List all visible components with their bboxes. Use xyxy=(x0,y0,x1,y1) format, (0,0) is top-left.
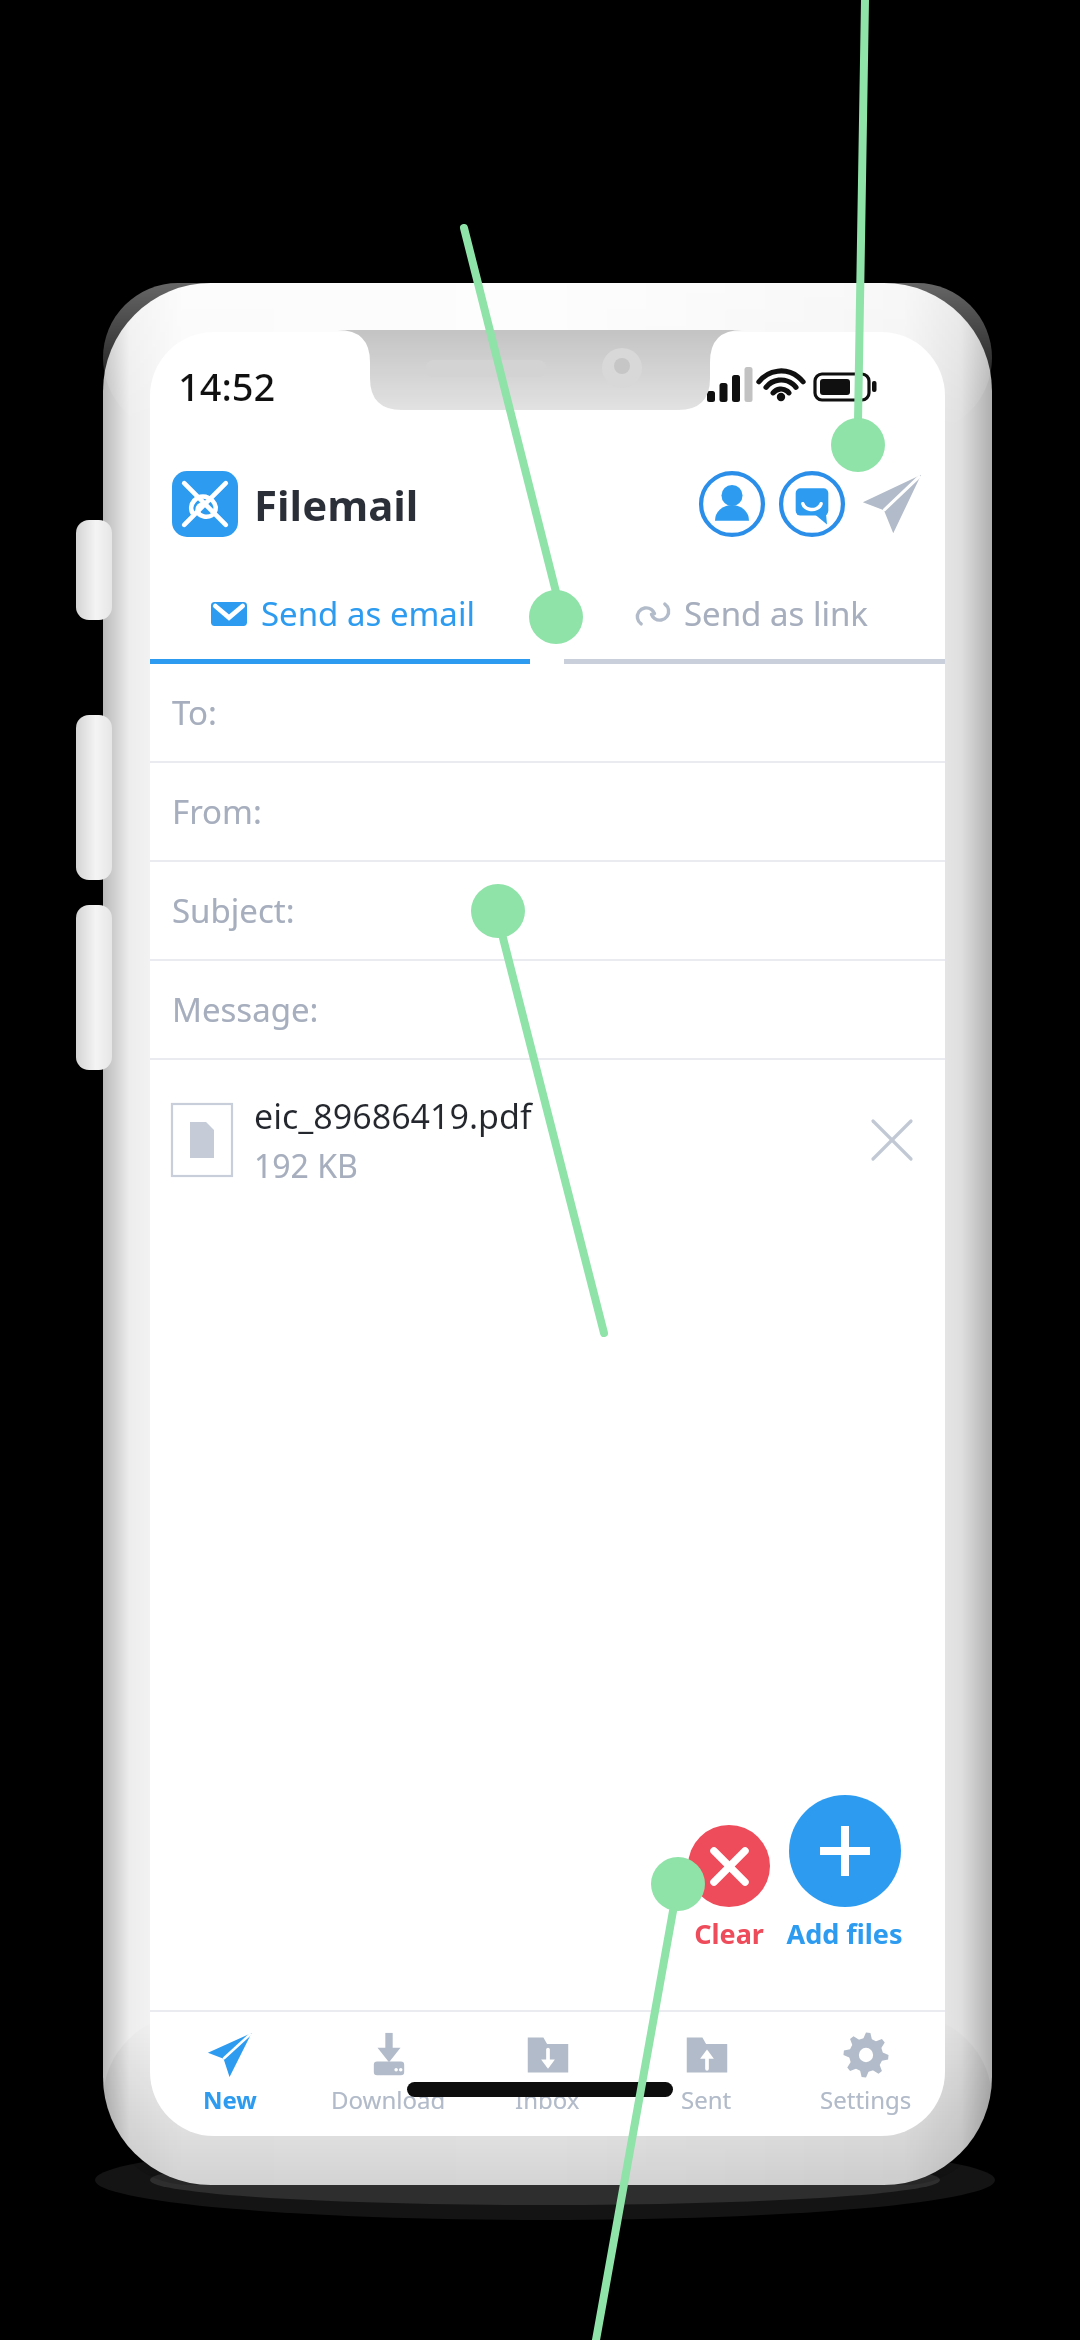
staticText: Inbox xyxy=(515,2083,580,2116)
button[interactable]: Download xyxy=(309,2012,468,2136)
button[interactable]: Clear xyxy=(688,1825,770,1952)
button[interactable]: Inbox xyxy=(468,2012,627,2136)
button[interactable]: Remove file xyxy=(863,1111,921,1169)
staticText: Subject: xyxy=(172,888,295,933)
button[interactable]: Message: xyxy=(150,961,945,1060)
button[interactable]: Send as email xyxy=(150,568,536,664)
button[interactable]: New xyxy=(150,2012,309,2136)
button[interactable]: Sent xyxy=(627,2012,786,2136)
staticText: 14:52 xyxy=(178,360,276,412)
staticText: Add files xyxy=(786,1915,903,1952)
staticText: Send as link xyxy=(684,591,868,636)
button[interactable]: Settings xyxy=(786,2012,945,2136)
staticText: Settings xyxy=(820,2083,912,2116)
staticText: 192 KB xyxy=(254,1144,358,1188)
button[interactable]: Subject: xyxy=(150,862,945,961)
button[interactable]: Send as link xyxy=(558,568,945,664)
button[interactable]: From: xyxy=(150,763,945,862)
button[interactable]: Send xyxy=(857,469,927,539)
staticText: New xyxy=(203,2083,257,2116)
button[interactable]: Filemail xyxy=(172,471,238,537)
staticText: Filemail xyxy=(254,476,419,533)
button[interactable]: Messages xyxy=(777,469,847,539)
staticText: Send as email xyxy=(261,591,475,636)
staticText: eic_89686419.pdf xyxy=(254,1093,532,1139)
staticText: Clear xyxy=(694,1915,764,1952)
staticText: To: xyxy=(172,690,217,735)
button[interactable]: Add files xyxy=(786,1795,903,1952)
button[interactable]: To: xyxy=(150,664,945,763)
button[interactable]: eic_89686419.pdf xyxy=(150,1060,945,1220)
staticText: Sent xyxy=(681,2083,732,2116)
staticText: From: xyxy=(172,789,262,834)
staticText: Download xyxy=(331,2083,446,2116)
staticText: Message: xyxy=(172,987,319,1032)
button[interactable]: Contacts xyxy=(697,469,767,539)
